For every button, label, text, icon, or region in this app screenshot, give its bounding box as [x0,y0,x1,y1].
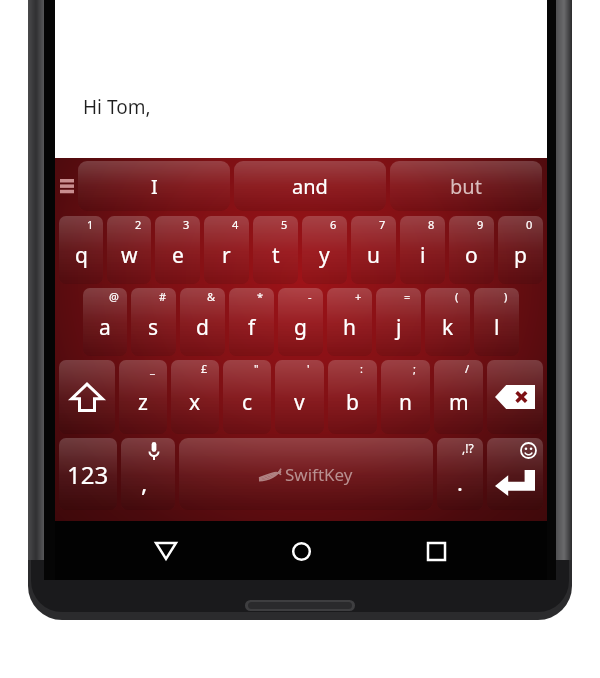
staticText: * [257,289,264,304]
staticText: 1 [87,217,94,232]
staticText: d [196,313,209,342]
button[interactable]: + [327,288,372,356]
button[interactable]: ; [381,360,430,434]
staticText: I [151,173,158,200]
button[interactable]: - [278,288,323,356]
button[interactable]: but [390,161,542,211]
staticText: 2 [135,217,142,232]
button[interactable]: @ [83,288,127,356]
staticText: 123 [67,458,109,491]
staticText: s [148,313,159,342]
staticText: ' [307,361,310,376]
staticText: ; [413,361,416,376]
staticText: o [465,241,478,270]
button[interactable]: = [376,288,421,356]
staticText: z [138,388,148,417]
button[interactable]: # [131,288,176,356]
button[interactable]: £ [171,360,219,434]
staticText: 3 [183,217,190,232]
staticText: 9 [477,217,484,232]
button[interactable]: Enter [487,438,543,510]
staticText: 5 [281,217,288,232]
button[interactable]: and [234,161,386,211]
button[interactable]: Voice input [121,438,175,510]
staticText: # [159,289,167,304]
staticText: 6 [330,217,337,232]
button[interactable]: 123 [59,438,117,510]
button[interactable]: SwiftKey [179,438,433,510]
staticText: but [450,173,482,200]
staticText: , [141,466,148,499]
staticText: c [242,388,253,417]
staticText: j [396,313,402,342]
staticText: p [514,241,527,270]
staticText: k [442,313,454,342]
button[interactable]: & [180,288,225,356]
staticText: 0 [526,217,533,232]
staticText: x [189,388,201,417]
button[interactable]: * [229,288,274,356]
staticText: w [121,241,138,270]
staticText: 7 [379,217,386,232]
button[interactable]: I [78,161,230,211]
staticText: q [75,241,88,270]
staticText: @ [109,289,119,304]
staticText: r [222,241,231,270]
staticText: e [172,241,184,270]
staticText: and [292,173,328,200]
button[interactable]: ) [474,288,519,356]
staticText: h [343,313,356,342]
staticText: _ [150,361,155,376]
staticText: SwiftKey [285,463,353,486]
staticText: g [294,313,307,342]
staticText: + [355,289,362,304]
button[interactable]: _ [119,360,167,434]
staticText: v [294,388,305,417]
staticText: & [207,289,216,304]
button[interactable]: 5 [253,216,298,284]
staticText: f [248,313,256,342]
button[interactable]: Back [142,527,190,575]
staticText: b [346,388,359,417]
staticText: = [404,289,411,304]
button[interactable]: ,!? [437,438,483,510]
button[interactable]: 7 [351,216,396,284]
button[interactable]: 8 [400,216,445,284]
staticText: i [420,241,426,270]
button[interactable]: 2 [107,216,151,284]
staticText: . [457,467,463,497]
staticText: : [360,361,363,376]
staticText: " [254,361,259,376]
button[interactable]: 0 [498,216,543,284]
button[interactable]: Menu [58,161,76,211]
staticText: / [465,361,470,376]
button[interactable]: : [328,360,377,434]
staticText: y [319,241,330,270]
staticText: Hi Tom, [83,94,151,120]
staticText: 4 [232,217,239,232]
button[interactable]: " [223,360,271,434]
staticText: m [449,388,469,417]
button[interactable]: 9 [449,216,494,284]
staticText: n [399,388,412,417]
button[interactable]: 1 [59,216,103,284]
button[interactable]: 4 [204,216,249,284]
button[interactable]: Recents [412,527,460,575]
staticText: ( [455,289,459,304]
staticText: - [308,289,312,304]
staticText: ) [504,289,508,304]
button[interactable]: ' [275,360,324,434]
staticText: t [272,241,280,270]
button[interactable]: Home [277,527,325,575]
button[interactable]: 3 [155,216,200,284]
button[interactable]: / [434,360,483,434]
button[interactable]: 6 [302,216,347,284]
staticText: ,!? [462,440,474,456]
staticText: 8 [428,217,435,232]
button[interactable]: Backspace [487,360,543,434]
staticText: u [367,241,380,270]
button[interactable]: Shift [59,360,115,434]
staticText: a [99,313,111,342]
button[interactable]: ( [425,288,470,356]
staticText: £ [201,361,208,376]
